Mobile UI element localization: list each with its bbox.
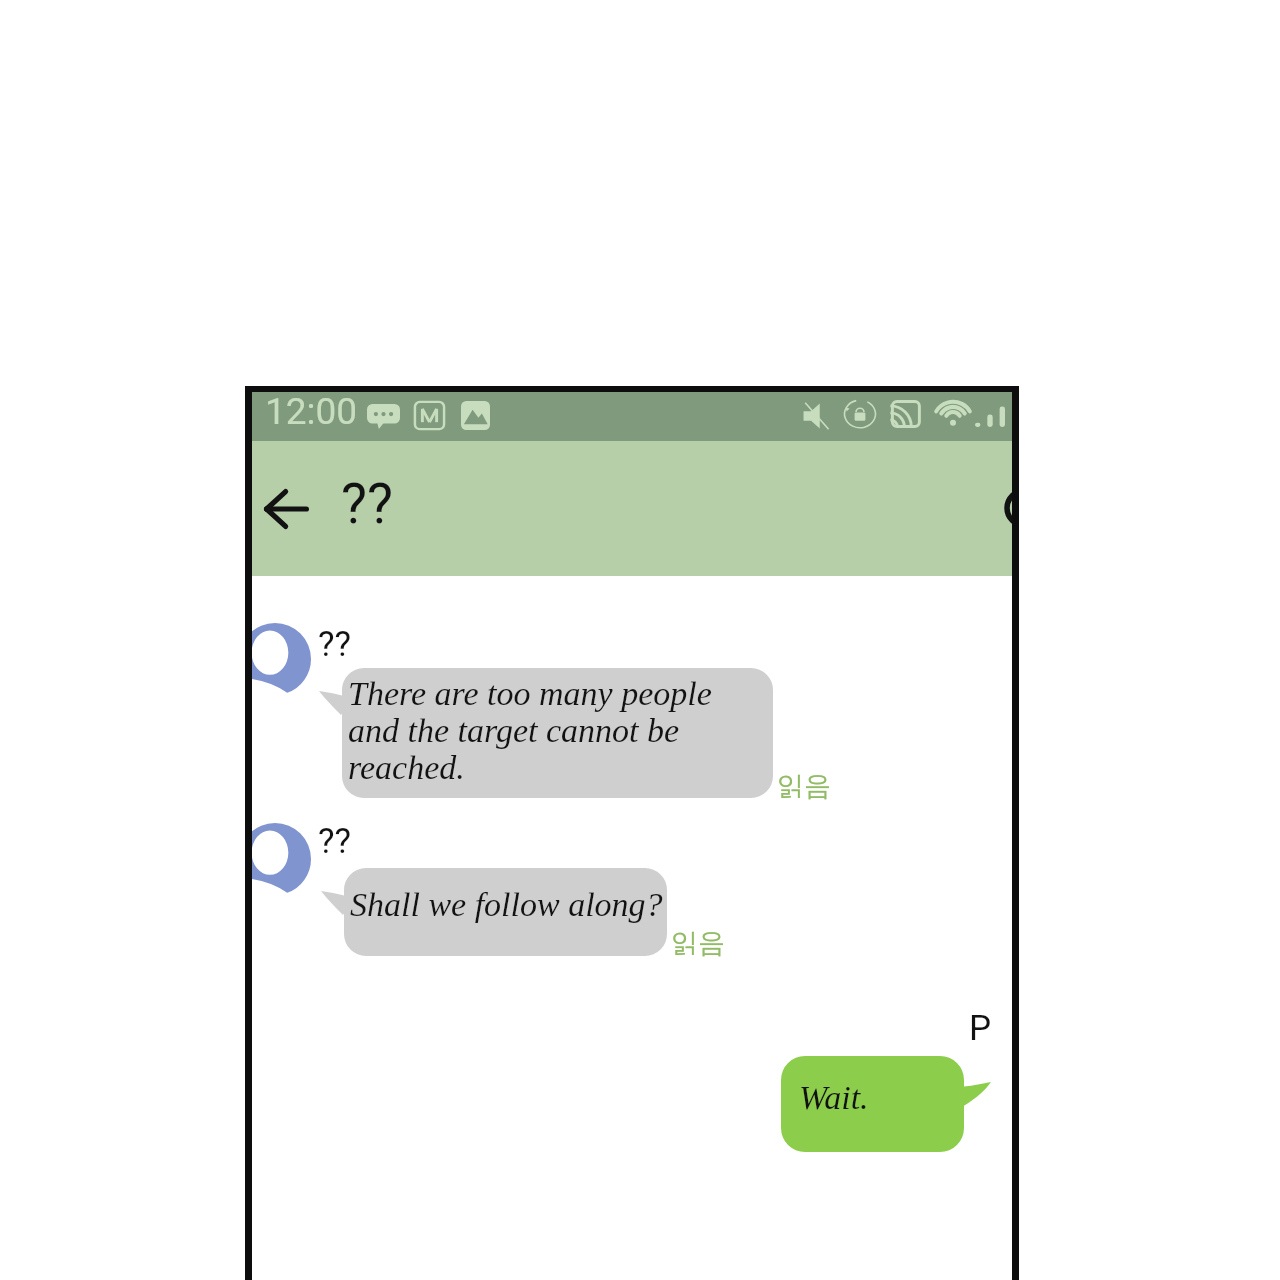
button[interactable]: Back [252,473,322,545]
staticText: 읽음 [671,926,725,960]
staticText: There are too many people and the target… [348,675,748,787]
button[interactable]: Profile picture [252,623,311,695]
button[interactable]: Profile picture [252,823,311,895]
button[interactable]: Shall we follow along? [344,868,667,956]
staticText: Shall we follow along? [350,886,670,924]
staticText: P [969,1008,992,1049]
staticText: ?? [318,624,352,665]
staticText: 12:00 [265,392,358,433]
button[interactable]: There are too many people and the target… [342,668,773,798]
button[interactable]: Wait. [781,1056,964,1152]
staticText: ?? [318,821,352,862]
staticText: Wait. [799,1079,869,1117]
staticText: 읽음 [777,769,831,803]
button[interactable]: More options [992,476,1012,540]
staticText: ?? [341,472,393,536]
